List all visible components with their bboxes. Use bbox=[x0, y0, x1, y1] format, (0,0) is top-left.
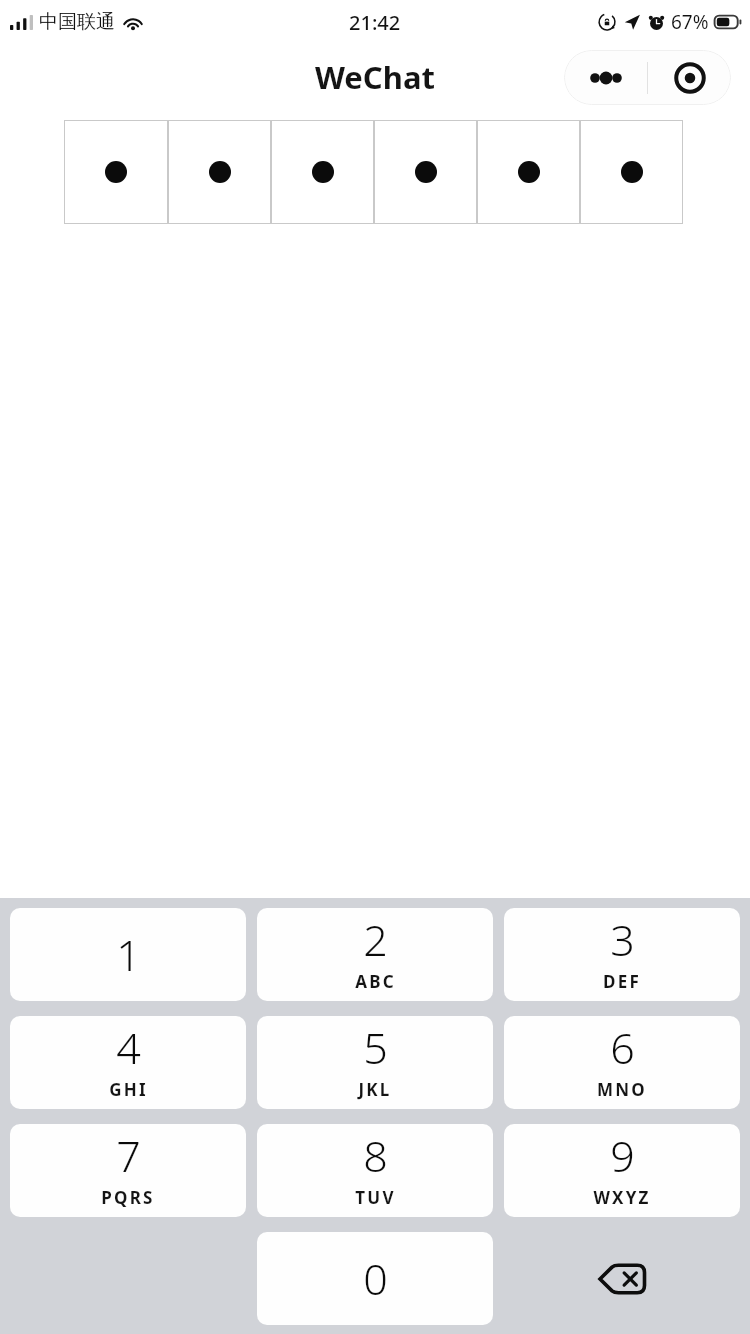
button[interactable] bbox=[374, 120, 477, 224]
staticText: DEF bbox=[603, 970, 641, 993]
staticText: 5 bbox=[363, 1018, 388, 1077]
button[interactable]: 9 bbox=[504, 1124, 740, 1217]
button[interactable] bbox=[271, 120, 374, 224]
button[interactable]: 7 bbox=[10, 1124, 246, 1217]
button[interactable]: More bbox=[564, 50, 647, 105]
button[interactable] bbox=[168, 120, 271, 224]
staticText: GHI bbox=[109, 1078, 148, 1101]
staticText: TUV bbox=[355, 1186, 396, 1209]
staticText: 3 bbox=[610, 910, 635, 969]
staticText: 67% bbox=[671, 9, 709, 35]
staticText: 8 bbox=[363, 1126, 388, 1185]
staticText: 21:42 bbox=[349, 9, 401, 36]
staticText: ABC bbox=[355, 970, 396, 993]
button[interactable]: 6 bbox=[504, 1016, 740, 1109]
staticText: JKL bbox=[358, 1078, 392, 1101]
staticText: 6 bbox=[610, 1018, 635, 1077]
staticText: 0 bbox=[363, 1249, 388, 1308]
staticText: 7 bbox=[116, 1126, 141, 1185]
staticText: 中国联通 bbox=[39, 10, 115, 34]
button[interactable] bbox=[477, 120, 580, 224]
staticText: WXYZ bbox=[593, 1186, 651, 1209]
button[interactable]: 1 bbox=[10, 908, 246, 1001]
staticText: 1 bbox=[116, 925, 141, 984]
button[interactable] bbox=[64, 120, 168, 224]
button[interactable]: 0 bbox=[257, 1232, 493, 1325]
staticText: 2 bbox=[363, 910, 388, 969]
staticText: PQRS bbox=[101, 1186, 155, 1209]
button[interactable]: 2 bbox=[257, 908, 493, 1001]
button[interactable] bbox=[580, 120, 683, 224]
staticText: WeChat bbox=[315, 56, 435, 98]
button[interactable]: 8 bbox=[257, 1124, 493, 1217]
button[interactable]: Close bbox=[648, 50, 731, 105]
button[interactable]: Backspace bbox=[504, 1232, 740, 1325]
button[interactable]: 5 bbox=[257, 1016, 493, 1109]
staticText: MNO bbox=[597, 1078, 647, 1101]
button[interactable]: 3 bbox=[504, 908, 740, 1001]
staticText: 9 bbox=[610, 1126, 635, 1185]
button[interactable]: 4 bbox=[10, 1016, 246, 1109]
staticText: 4 bbox=[116, 1018, 141, 1077]
